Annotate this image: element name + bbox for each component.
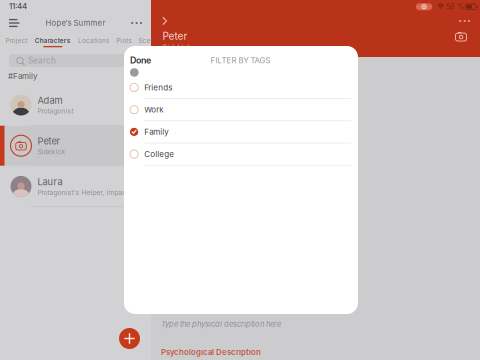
button[interactable]: Family <box>124 121 358 143</box>
button[interactable]: Project <box>2 34 31 50</box>
staticText: Locations <box>78 37 109 44</box>
staticText: Protagonist <box>37 107 73 115</box>
staticText: Sidekick <box>162 43 191 52</box>
staticText: Laura <box>37 176 62 187</box>
staticText: Peter <box>162 30 187 42</box>
staticText: Peter <box>37 135 60 147</box>
button[interactable]: Adam <box>0 85 151 125</box>
button[interactable]: Friends <box>124 77 358 99</box>
staticText: Type the physical description here <box>161 319 281 329</box>
staticText: Project <box>6 37 28 44</box>
staticText: Adam <box>37 95 62 106</box>
button[interactable]: Done <box>130 54 151 67</box>
staticText: Hope's Summer <box>45 18 105 28</box>
staticText: #Family <box>8 71 37 81</box>
button[interactable]: Work <box>124 99 358 121</box>
staticText: Done <box>130 55 151 66</box>
staticText: Work <box>144 105 163 115</box>
button[interactable]: College <box>124 143 358 165</box>
button[interactable]: Menu <box>4 14 24 32</box>
staticText: Sidekick <box>37 148 65 156</box>
staticText: Characters <box>35 37 71 44</box>
button[interactable]: Sce <box>135 34 154 50</box>
button[interactable]: Change photo <box>453 30 468 43</box>
staticText: Search <box>28 55 56 65</box>
staticText: 58 % <box>446 2 464 11</box>
button[interactable]: Show sidebar <box>156 14 174 28</box>
staticText: Psychological Description <box>161 348 261 357</box>
staticText: Plots <box>116 37 131 44</box>
staticText: FILTER BY TAGS <box>210 56 270 65</box>
button[interactable]: Plots <box>113 34 135 50</box>
button[interactable]: More <box>126 15 147 31</box>
button[interactable]: Laura <box>0 166 151 206</box>
button[interactable]: Locations <box>74 34 113 50</box>
staticText: 11:44 <box>9 1 27 11</box>
staticText: Family <box>144 127 168 137</box>
staticText: Protagonist's Helper, Impact <box>37 188 128 197</box>
button[interactable]: More options <box>454 14 475 28</box>
button[interactable]: Filter by tags <box>128 69 143 83</box>
staticText: College <box>144 149 174 159</box>
staticText: Sce <box>138 37 150 44</box>
staticText: Friends <box>144 83 172 92</box>
button[interactable]: Characters <box>31 34 74 50</box>
button[interactable]: Peter <box>0 126 151 166</box>
